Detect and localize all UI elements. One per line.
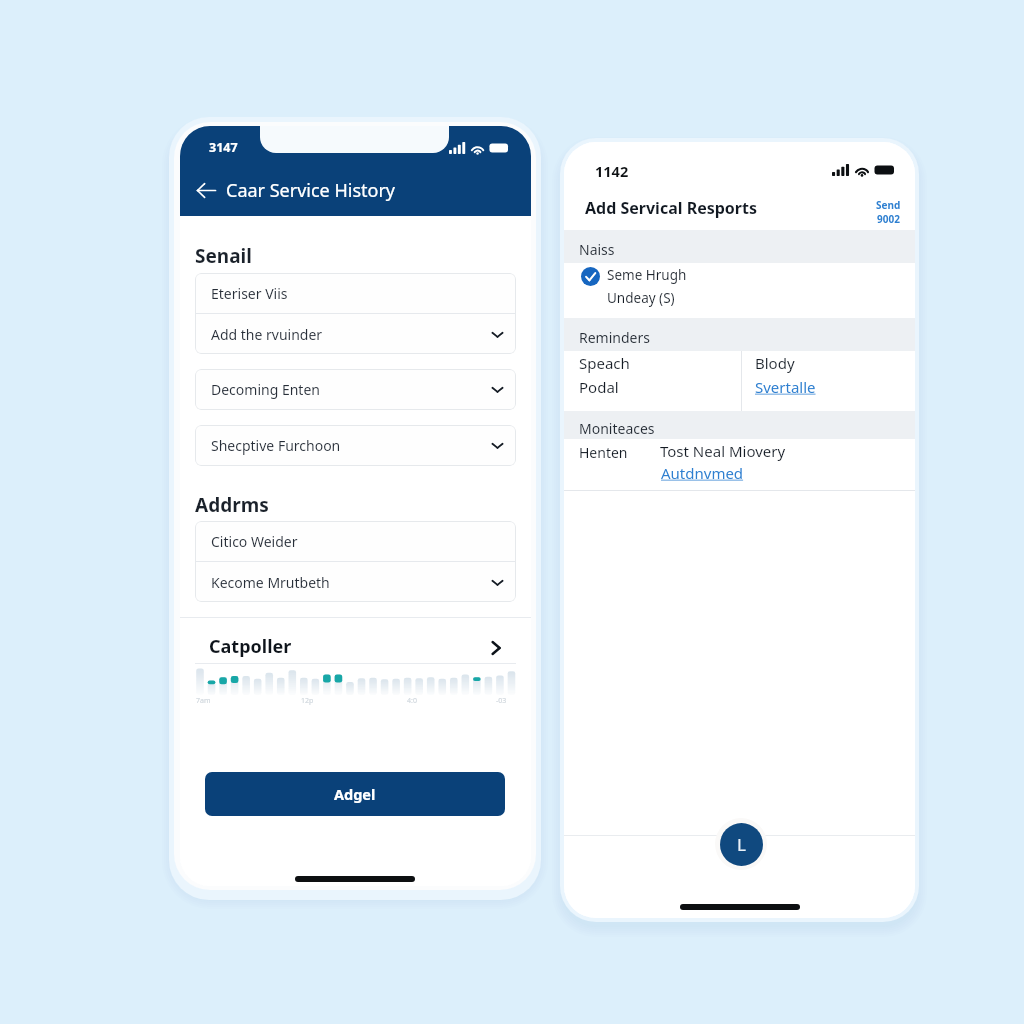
staticText: Adgel — [334, 784, 376, 804]
button[interactable]: Seme Hrugh — [564, 263, 915, 318]
staticText: 9002 — [877, 212, 900, 226]
staticText: Catpoller — [209, 634, 292, 659]
button[interactable]: Kecome Mrutbeth — [211, 562, 505, 602]
button[interactable]: Send — [869, 198, 907, 226]
staticText: -03 — [496, 696, 507, 706]
staticText: 7am — [196, 696, 211, 706]
button[interactable]: Back — [192, 176, 221, 205]
staticText: L — [737, 833, 746, 856]
button[interactable]: Eteriser Viis — [211, 273, 505, 313]
button[interactable]: Adgel — [205, 772, 505, 816]
staticText: Speach — [579, 353, 630, 373]
staticText: Tost Neal Miovery — [660, 441, 786, 461]
button[interactable]: Citico Weider — [211, 521, 505, 561]
staticText: Caar Service History — [226, 178, 396, 203]
staticText: 4:0 — [407, 696, 417, 706]
button[interactable]: Catpoller — [209, 628, 506, 664]
staticText: Podal — [579, 377, 619, 397]
staticText: 3147 — [209, 139, 238, 156]
staticText: Add the rvuinder — [211, 325, 323, 344]
staticText: Henten — [579, 443, 628, 462]
staticText: Naiss — [579, 240, 615, 259]
staticText: Blody — [755, 353, 795, 373]
staticText: Kecome Mrutbeth — [211, 573, 330, 592]
staticText: 12p — [301, 696, 314, 706]
staticText: Add Servical Resports — [585, 197, 757, 219]
staticText: Shecptive Furchoon — [211, 436, 341, 455]
staticText: Senail — [195, 243, 252, 269]
staticText: Send — [876, 198, 901, 212]
button[interactable]: Add — [715, 818, 767, 870]
staticText: Autdnvmed — [661, 463, 744, 483]
button[interactable]: Speach — [564, 351, 741, 411]
button[interactable]: Decoming Enten — [211, 369, 505, 410]
button[interactable]: Add the rvuinder — [211, 314, 505, 354]
staticText: Reminders — [579, 328, 650, 347]
button[interactable]: Shecptive Furchoon — [211, 425, 505, 466]
staticText: 1142 — [595, 161, 629, 181]
staticText: Undeay (S) — [607, 289, 675, 307]
staticText: Eteriser Viis — [211, 284, 288, 303]
staticText: Decoming Enten — [211, 380, 320, 399]
staticText: Seme Hrugh — [607, 266, 687, 284]
staticText: Svertalle — [755, 377, 816, 397]
staticText: Citico Weider — [211, 532, 298, 551]
button[interactable]: Blody — [742, 351, 915, 411]
button[interactable]: Henten — [564, 439, 915, 490]
staticText: Moniteaces — [579, 419, 655, 438]
staticText: Addrms — [195, 492, 269, 518]
